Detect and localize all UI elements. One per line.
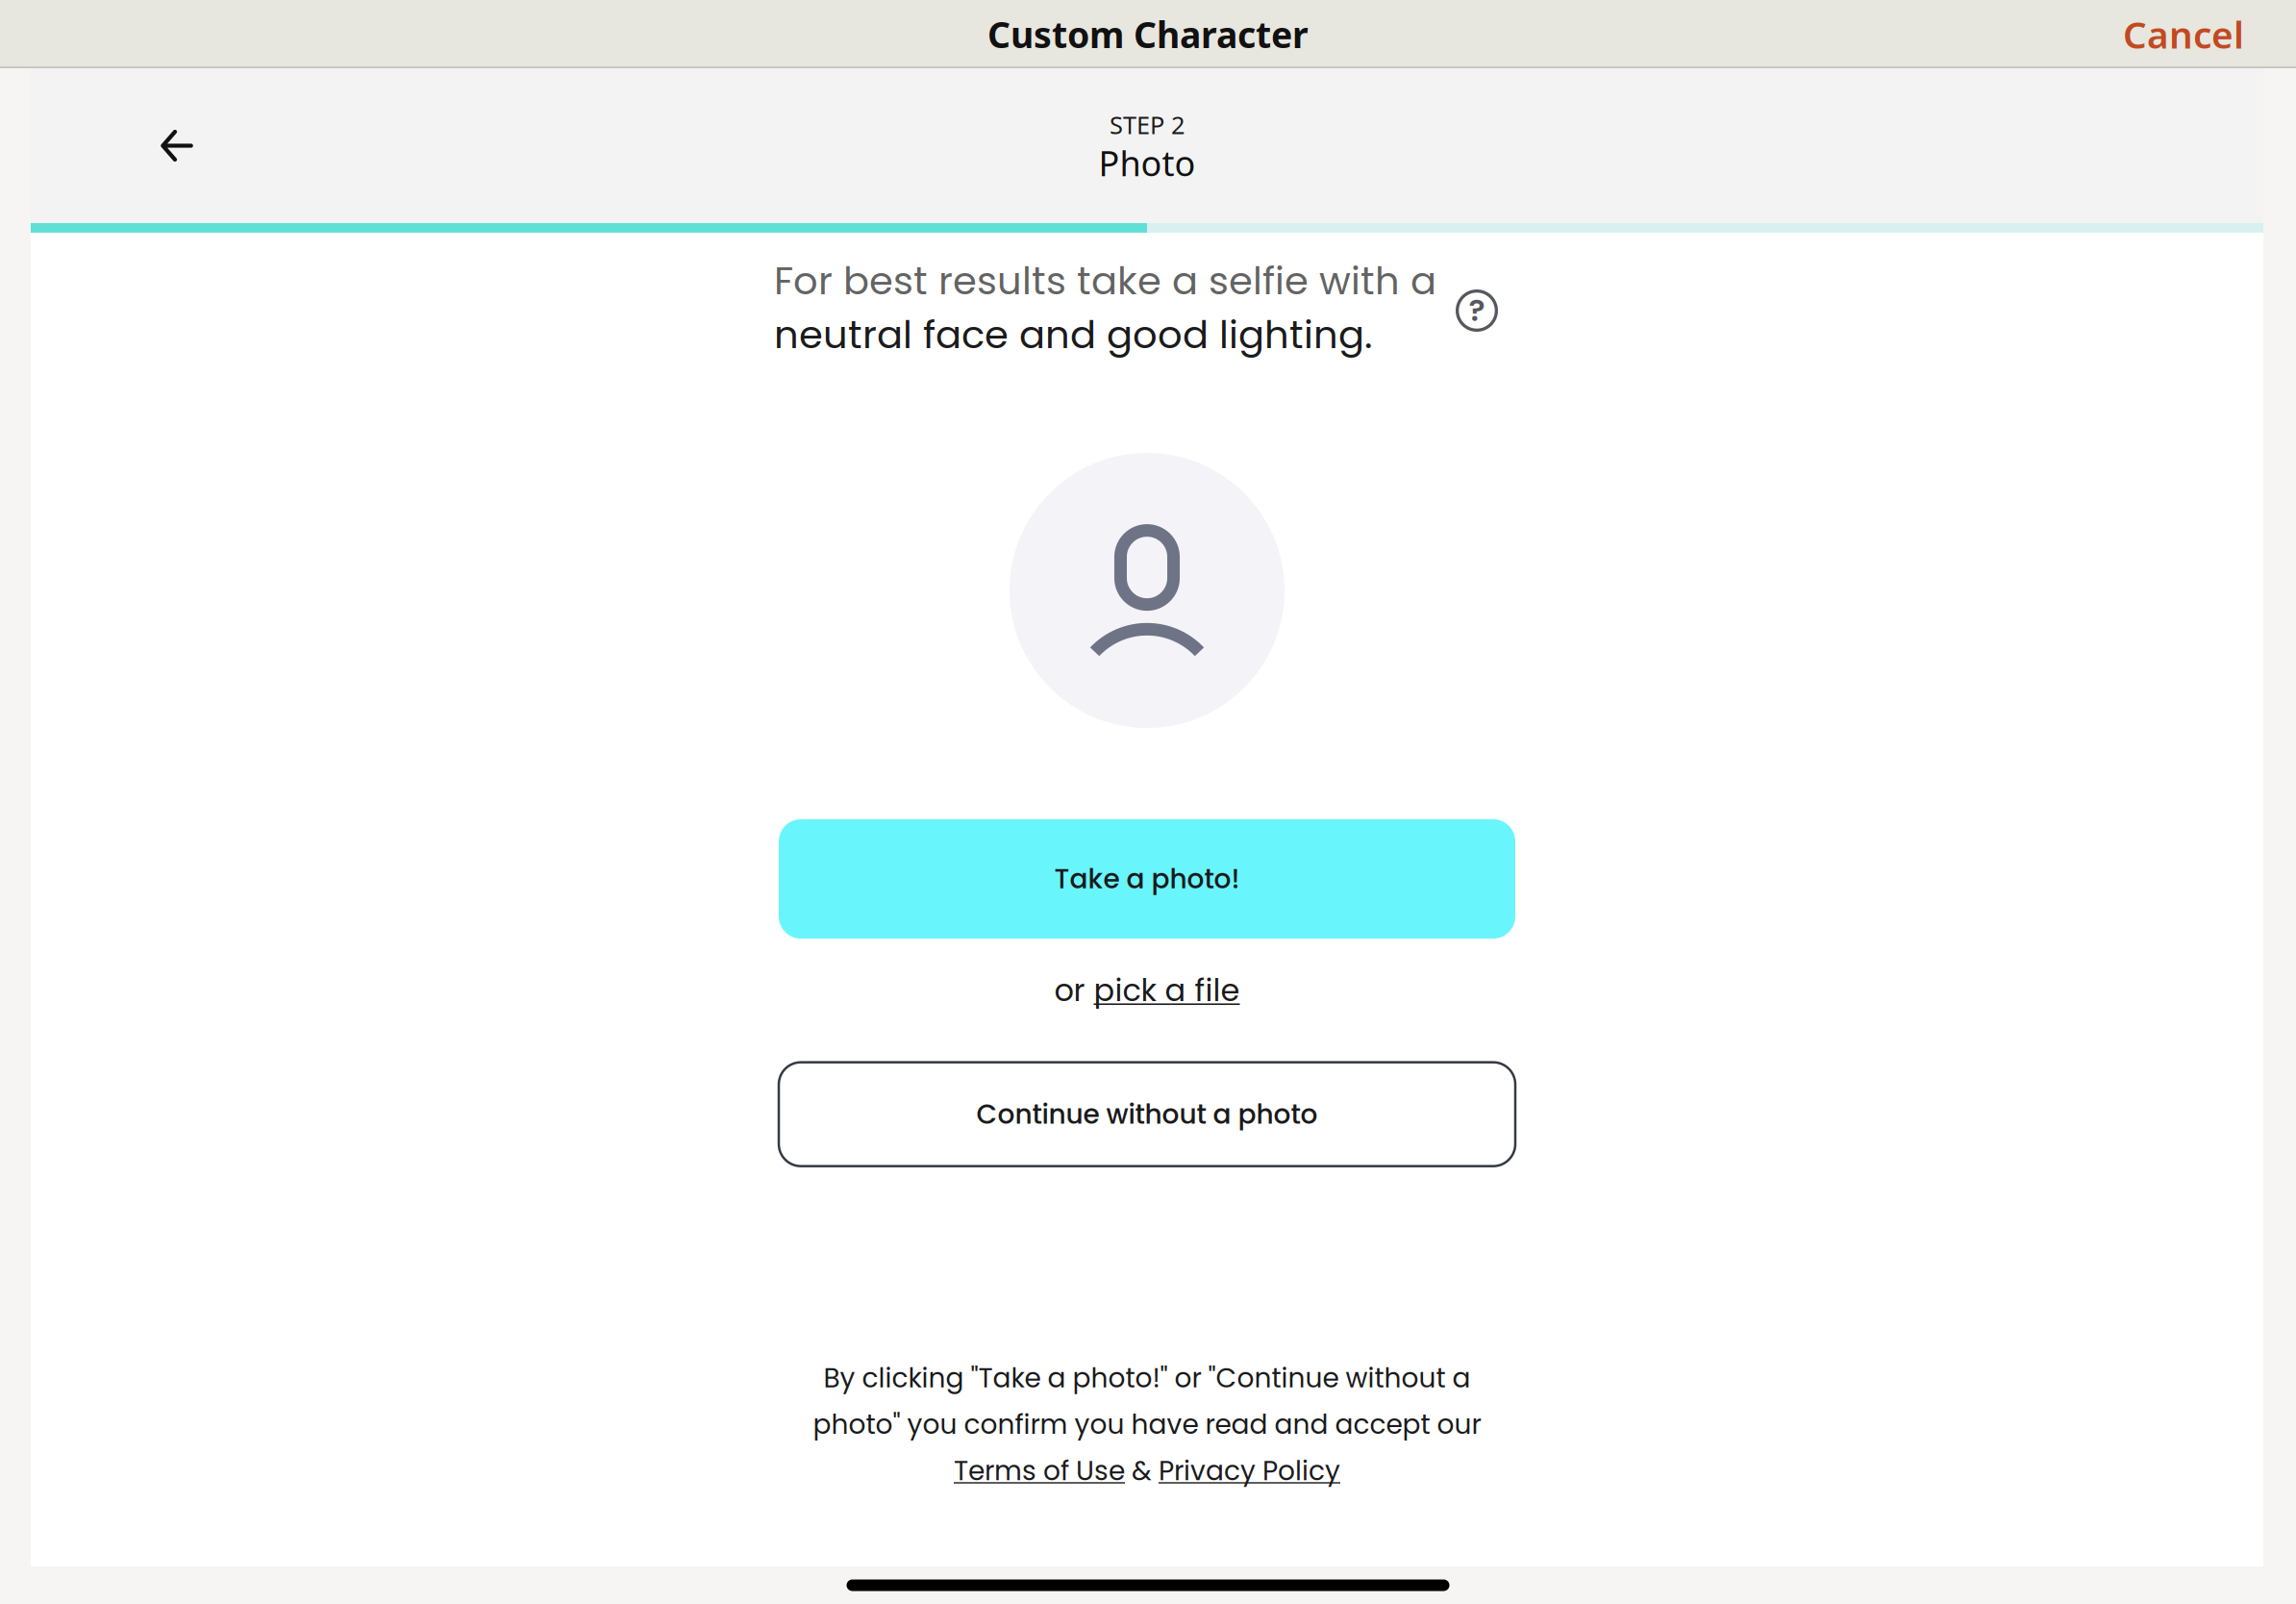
staticText: Continue without a photo bbox=[976, 1095, 1318, 1133]
staticText: neutral face and good lighting. bbox=[774, 308, 1372, 362]
button[interactable]: or pick a file bbox=[1039, 964, 1255, 1017]
staticText: Photo bbox=[1098, 140, 1196, 186]
staticText: By clicking "Take a photo!" or "Continue… bbox=[824, 1359, 1471, 1397]
staticText: & bbox=[1125, 1452, 1159, 1490]
button[interactable]: Back bbox=[137, 106, 216, 185]
staticText: Custom Character bbox=[987, 10, 1309, 58]
staticText: or pick a file bbox=[1054, 969, 1240, 1011]
staticText: Privacy Policy bbox=[1159, 1452, 1340, 1490]
staticText: For best results take a selfie with a bbox=[774, 254, 1436, 308]
button[interactable]: Continue without a photo bbox=[779, 1062, 1515, 1166]
staticText: photo" you confirm you have read and acc… bbox=[813, 1406, 1481, 1443]
button[interactable]: Help bbox=[1456, 289, 1498, 332]
staticText: Terms of Use bbox=[954, 1452, 1125, 1490]
staticText: Cancel bbox=[2123, 9, 2244, 59]
staticText: Take a photo! bbox=[1054, 860, 1240, 898]
button[interactable]: Cancel bbox=[2090, 0, 2296, 72]
button[interactable]: Privacy Policy bbox=[1159, 1452, 1340, 1490]
staticText: STEP 2 bbox=[1110, 108, 1185, 141]
staticText: ? bbox=[1469, 289, 1485, 332]
button[interactable]: Terms of Use bbox=[954, 1452, 1125, 1490]
button[interactable]: Take a photo! bbox=[779, 819, 1515, 939]
